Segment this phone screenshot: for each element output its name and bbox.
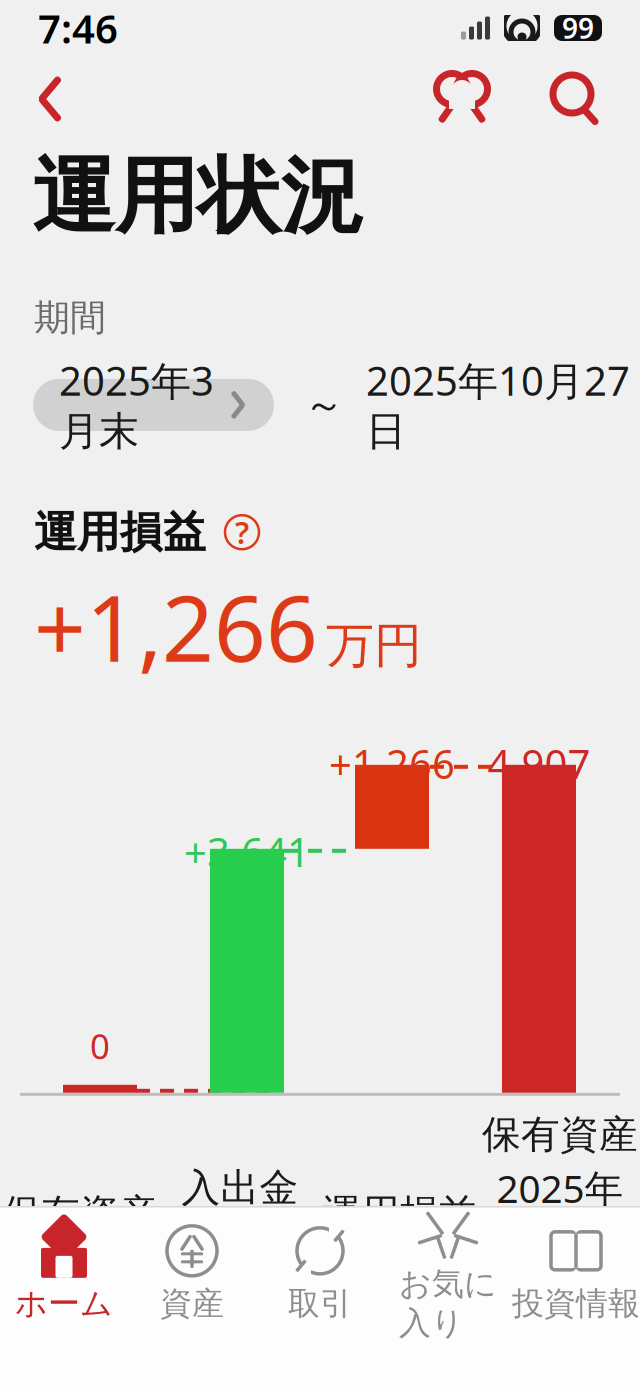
staticText: 投資情報 (512, 1284, 640, 1323)
staticText: 入出庫 (181, 1216, 298, 1263)
button[interactable]: 検索 (538, 65, 614, 133)
staticText: +1,266 (34, 566, 318, 687)
button[interactable]: ホーム (0, 1210, 128, 1333)
staticText: 資産 (160, 1284, 224, 1323)
staticText: 0 (90, 1023, 110, 1069)
staticText: 2025年10月27日 (366, 354, 630, 456)
button[interactable]: 資産 (128, 1210, 256, 1333)
staticText: 万円 (326, 616, 422, 675)
staticText: 4,907 (487, 737, 590, 790)
staticText: お気に入り (399, 1264, 497, 1343)
button[interactable]: 2025年3月末 (33, 379, 274, 431)
button[interactable]: 取引 (256, 1210, 384, 1333)
button[interactable]: 戻る (14, 64, 86, 134)
staticText: 保有資産 (482, 1111, 638, 1158)
staticText: 取引 (288, 1284, 352, 1323)
staticText: 2025年3月末 (59, 354, 214, 456)
staticText: ホーム (15, 1284, 113, 1323)
staticText: 運用損益 (34, 506, 206, 558)
staticText: 7:46 (38, 1, 118, 54)
button[interactable]: 運用損益について (222, 512, 262, 552)
staticText: 入出金 (181, 1164, 298, 1212)
staticText: ～ (304, 380, 344, 429)
button[interactable]: お気に入り (424, 65, 500, 133)
staticText: ? (235, 512, 249, 552)
staticText: 99 (562, 9, 594, 47)
staticText: 運用状況 (32, 146, 364, 247)
staticText: 10月27日 (496, 1218, 623, 1316)
staticText: 2025年 (496, 1162, 623, 1214)
staticText: +1,266 (329, 737, 455, 790)
staticText: 保有資産 (2, 1190, 158, 1237)
button[interactable]: 投資情報 (512, 1210, 640, 1333)
staticText: 運用損益 (322, 1190, 478, 1237)
button[interactable]: お気に入り (384, 1190, 512, 1353)
staticText: +3,641 (184, 825, 310, 878)
staticText: 期間 (34, 295, 106, 340)
